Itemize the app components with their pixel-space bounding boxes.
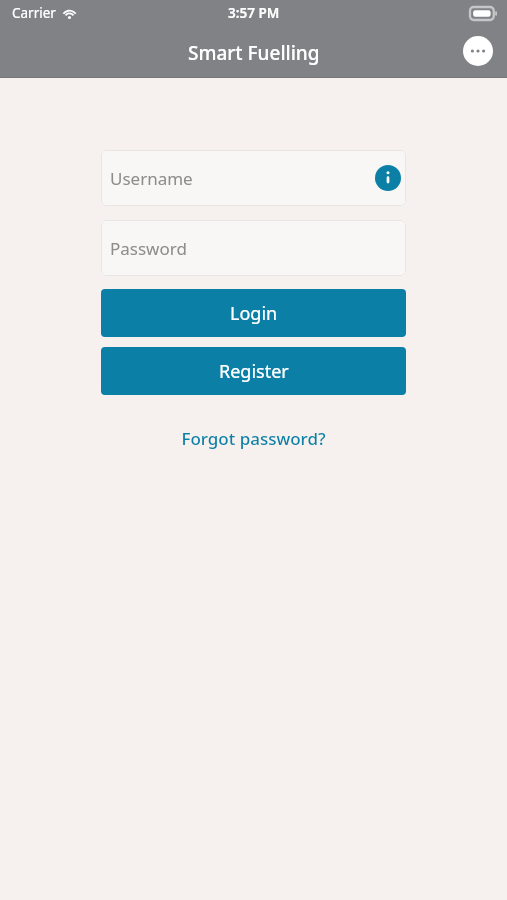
staticText: Password: [110, 237, 187, 260]
staticText: Smart Fuelling: [188, 40, 320, 66]
staticText: Carrier: [12, 4, 56, 22]
button[interactable]: Username info: [375, 165, 401, 191]
staticText: 3:57 PM: [228, 4, 280, 22]
button[interactable]: Password: [101, 220, 406, 276]
button[interactable]: Register: [101, 347, 406, 395]
button[interactable]: Username: [101, 150, 406, 206]
staticText: Forgot password?: [181, 427, 326, 450]
button[interactable]: Forgot password?: [101, 427, 406, 450]
button[interactable]: More options: [463, 36, 493, 66]
button[interactable]: Login: [101, 289, 406, 337]
staticText: Login: [230, 301, 278, 326]
staticText: Register: [219, 359, 289, 384]
staticText: Username: [110, 167, 193, 190]
